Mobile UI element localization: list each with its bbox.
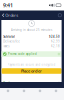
staticText: Taxes bbox=[3, 44, 9, 48]
button[interactable]: Help bbox=[56, 10, 64, 20]
staticText: Promo code applied bbox=[8, 52, 37, 56]
button[interactable]: Profile bbox=[48, 88, 64, 100]
button[interactable]: Place order bbox=[2, 68, 62, 74]
staticText: Arriving in about 25 minutes bbox=[11, 28, 52, 32]
staticText: Subtotal bbox=[3, 35, 15, 38]
staticText: Payments are secure and encrypted bbox=[8, 63, 56, 67]
staticText: Orders bbox=[5, 13, 18, 18]
staticText: $2.18 bbox=[51, 44, 60, 48]
button[interactable]: Orders bbox=[32, 88, 48, 100]
staticText: 9:41 bbox=[3, 2, 13, 9]
staticText: $2.99 bbox=[51, 40, 60, 43]
button[interactable]: Home bbox=[0, 88, 16, 100]
button[interactable]: Search bbox=[16, 88, 32, 100]
staticText: Delivery fee bbox=[3, 40, 20, 43]
staticText: On the way bbox=[3, 81, 18, 85]
button[interactable]: Orders bbox=[0, 10, 20, 20]
staticText: Place order bbox=[21, 68, 42, 74]
staticText: $24.50 bbox=[49, 35, 60, 38]
